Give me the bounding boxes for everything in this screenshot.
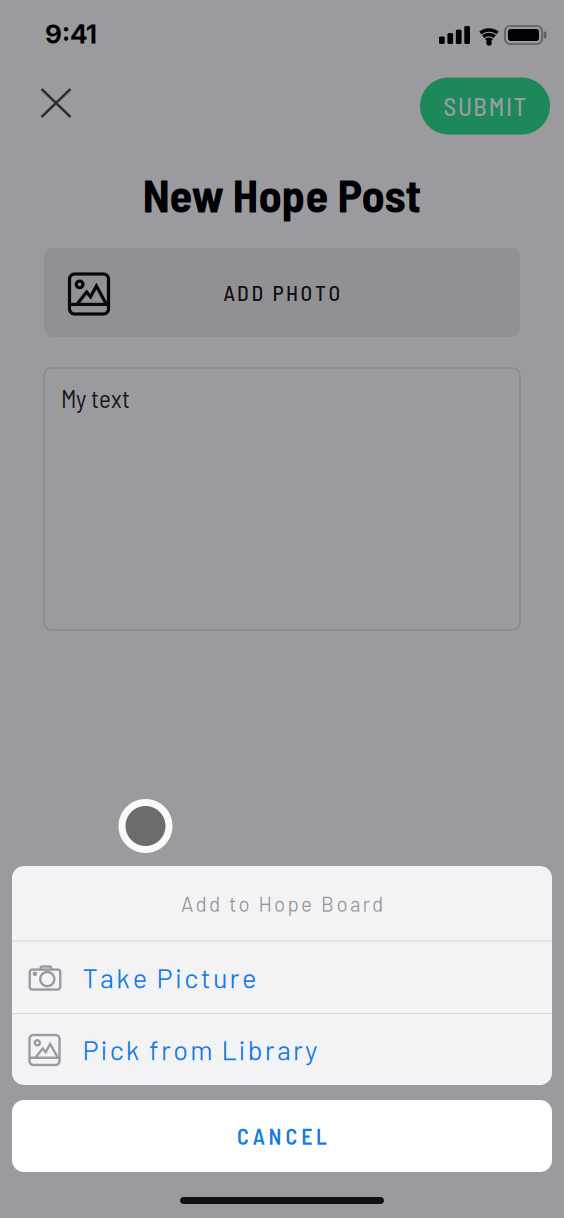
- staticText: i: [101, 1033, 108, 1066]
- staticText: c: [110, 1033, 124, 1066]
- staticText: M: [489, 91, 505, 121]
- staticText: o: [274, 891, 285, 916]
- staticText: r: [161, 1033, 171, 1066]
- staticText: A: [181, 891, 193, 916]
- staticText: k: [116, 961, 130, 994]
- staticText: N: [269, 1123, 282, 1149]
- staticText: P: [156, 961, 172, 994]
- staticText: e: [133, 961, 147, 994]
- staticText: d: [372, 891, 383, 916]
- staticText: C: [285, 1123, 297, 1149]
- staticText: My text: [61, 383, 130, 413]
- staticText: y: [305, 1033, 317, 1066]
- staticText: L: [221, 1033, 236, 1066]
- staticText: r: [229, 961, 239, 994]
- staticText: D: [237, 280, 249, 305]
- staticText: i: [175, 961, 182, 994]
- staticText: u: [213, 961, 227, 994]
- staticText: o: [336, 891, 347, 916]
- staticText: H: [286, 280, 298, 305]
- staticText: T: [82, 961, 97, 994]
- staticText: a: [277, 1033, 291, 1066]
- staticText: r: [362, 891, 369, 916]
- staticText: B: [473, 91, 487, 121]
- staticText: d: [209, 891, 220, 916]
- staticText: t: [229, 891, 236, 916]
- staticText: r: [265, 1033, 275, 1066]
- staticText: H: [258, 891, 271, 916]
- staticText: A: [253, 1123, 265, 1149]
- staticText: t: [201, 961, 211, 994]
- staticText: i: [239, 1033, 246, 1066]
- staticText: I: [506, 91, 512, 121]
- staticText: L: [316, 1123, 327, 1149]
- staticText: P: [82, 1033, 98, 1066]
- staticText: k: [126, 1033, 140, 1066]
- staticText: m: [190, 1033, 212, 1066]
- staticText: b: [248, 1033, 263, 1066]
- staticText: e: [301, 891, 312, 916]
- staticText: T: [513, 91, 526, 121]
- staticText: C: [237, 1123, 249, 1149]
- staticText: O: [328, 280, 340, 305]
- staticText: S: [443, 91, 456, 121]
- staticText: p: [287, 891, 298, 916]
- staticText: c: [184, 961, 198, 994]
- staticText: T: [315, 280, 326, 305]
- staticText: A: [223, 280, 234, 305]
- staticText: e: [242, 961, 256, 994]
- staticText: d: [195, 891, 206, 916]
- staticText: O: [300, 280, 312, 305]
- staticText: r: [293, 1033, 303, 1066]
- staticText: 9:41: [45, 18, 97, 50]
- staticText: a: [350, 891, 360, 916]
- staticText: D: [251, 280, 263, 305]
- staticText: f: [149, 1033, 159, 1066]
- staticText: E: [301, 1123, 312, 1149]
- staticText: U: [458, 91, 472, 121]
- staticText: P: [272, 280, 283, 305]
- staticText: a: [100, 961, 114, 994]
- staticText: New Hope Post: [142, 166, 421, 222]
- staticText: o: [238, 891, 249, 916]
- staticText: B: [321, 891, 334, 916]
- staticText: o: [173, 1033, 188, 1066]
